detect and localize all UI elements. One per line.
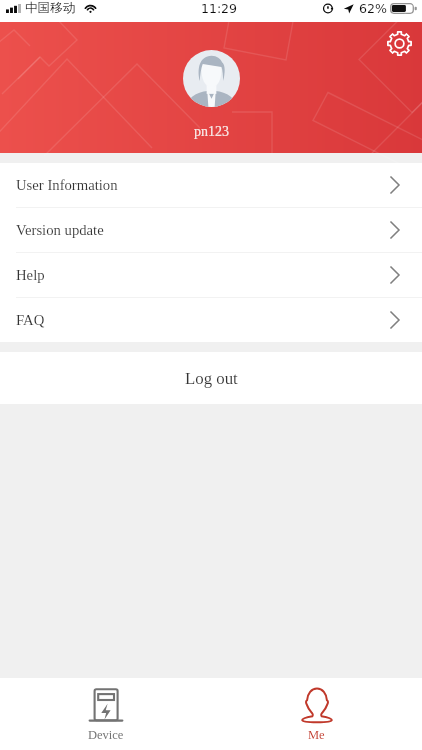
button[interactable]: Help bbox=[0, 253, 422, 297]
staticText: Version update bbox=[16, 222, 104, 238]
staticText: FAQ bbox=[16, 312, 45, 328]
button[interactable]: User Information bbox=[0, 163, 422, 207]
button[interactable]: Log out bbox=[0, 352, 422, 404]
button[interactable]: Version update bbox=[0, 208, 422, 252]
staticText: Device bbox=[88, 728, 124, 742]
staticText: 62% bbox=[359, 1, 387, 16]
staticText: Me bbox=[308, 728, 325, 742]
staticText: Help bbox=[16, 267, 45, 283]
staticText: 11:29 bbox=[201, 1, 238, 16]
button[interactable]: Settings bbox=[380, 24, 418, 62]
button[interactable]: Me bbox=[211, 678, 422, 750]
staticText: 中国移动 bbox=[25, 0, 76, 16]
staticText: Log out bbox=[185, 369, 238, 388]
staticText: User Information bbox=[16, 177, 118, 193]
staticText: pn123 bbox=[194, 124, 229, 140]
button[interactable]: FAQ bbox=[0, 298, 422, 342]
button[interactable]: Device bbox=[0, 678, 211, 750]
